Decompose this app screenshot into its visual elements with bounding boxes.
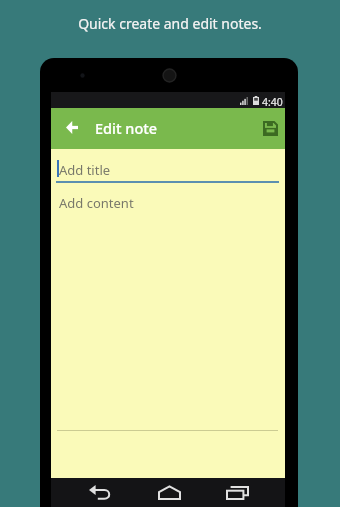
staticText: Edit note <box>95 118 158 138</box>
button[interactable]: Add title <box>59 161 111 179</box>
button[interactable]: Back <box>86 478 114 507</box>
button[interactable]: Add content <box>59 194 134 212</box>
staticText: Quick create and edit notes. <box>0 14 340 33</box>
button[interactable]: Recent apps <box>223 478 251 507</box>
button[interactable]: Home <box>155 478 183 507</box>
button[interactable]: Save note <box>256 108 284 149</box>
button[interactable]: Back <box>58 108 86 149</box>
staticText: 4:40 <box>262 95 283 109</box>
